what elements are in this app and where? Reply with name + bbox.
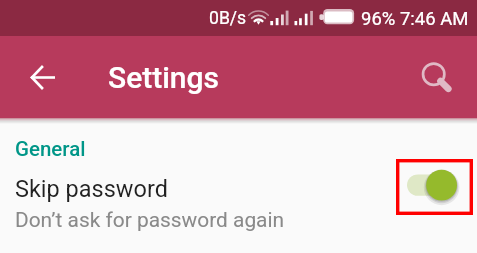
staticText: General [15, 137, 86, 161]
staticText: Settings [108, 60, 220, 95]
staticText: Skip password [15, 175, 168, 203]
button[interactable]: Back [21, 55, 65, 99]
staticText: Don’t ask for password again [15, 208, 285, 232]
button[interactable]: Skip password toggle [396, 159, 474, 216]
button[interactable]: Search [413, 55, 459, 101]
staticText: 0B/s [209, 8, 247, 29]
staticText: 96% 7:46 AM [361, 8, 469, 30]
button[interactable]: Skip password [0, 171, 477, 235]
